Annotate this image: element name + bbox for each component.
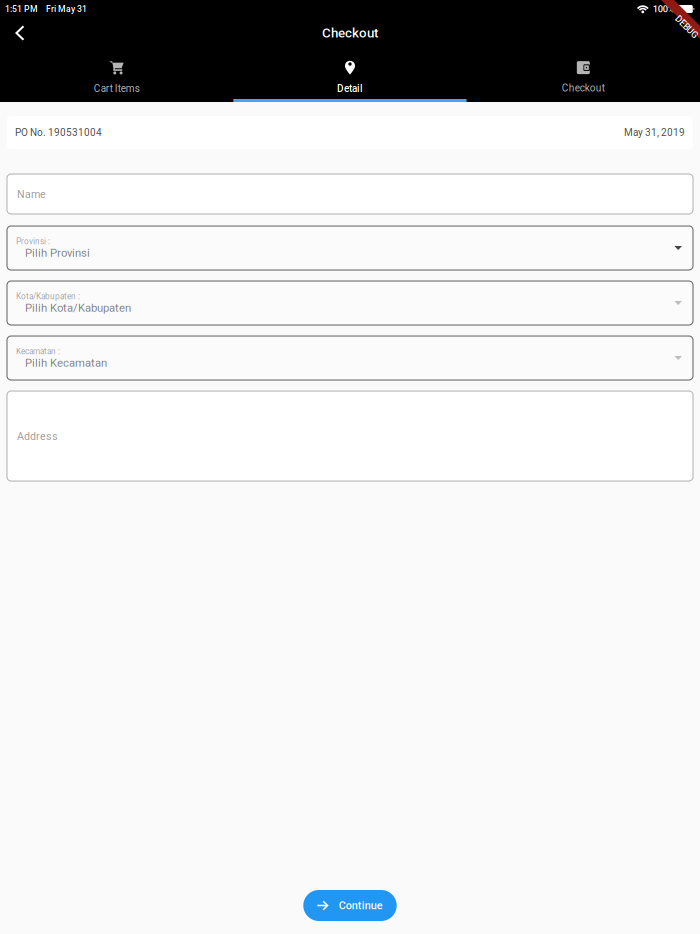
staticText: Kecamatan : bbox=[16, 346, 60, 356]
staticText: Pilih Kota/Kabupaten bbox=[25, 301, 131, 314]
staticText: PO No. 190531004 bbox=[15, 127, 102, 138]
staticText: Address bbox=[17, 430, 58, 442]
staticText: DEBUG bbox=[672, 22, 700, 32]
button[interactable]: Cart Items bbox=[0, 49, 233, 101]
staticText: 1:51 PM Fri May 31 bbox=[5, 4, 87, 14]
button[interactable]: Kota/Kabupaten : bbox=[0, 281, 700, 325]
staticText: May 31, 2019 bbox=[624, 127, 685, 138]
button[interactable]: Provinsi : bbox=[0, 226, 700, 270]
staticText: Checkout bbox=[562, 82, 605, 94]
button[interactable]: Address bbox=[0, 391, 700, 481]
button[interactable]: Kecamatan : bbox=[0, 336, 700, 380]
staticText: Name bbox=[17, 188, 46, 200]
staticText: Detail bbox=[337, 83, 363, 94]
staticText: Kota/Kabupaten : bbox=[16, 291, 80, 301]
staticText: Cart Items bbox=[94, 83, 140, 94]
button[interactable]: Continue bbox=[303, 890, 397, 921]
button[interactable]: Checkout bbox=[467, 49, 700, 101]
staticText: Pilih Kecamatan bbox=[25, 356, 107, 369]
staticText: Checkout bbox=[322, 25, 378, 41]
button[interactable]: Back bbox=[0, 18, 39, 48]
staticText: Continue bbox=[339, 899, 383, 912]
button[interactable]: Detail bbox=[233, 49, 467, 101]
staticText: Provinsi : bbox=[16, 236, 50, 246]
staticText: 100% bbox=[653, 3, 675, 14]
button[interactable]: Name bbox=[0, 174, 700, 214]
staticText: Pilih Provinsi bbox=[25, 246, 90, 259]
